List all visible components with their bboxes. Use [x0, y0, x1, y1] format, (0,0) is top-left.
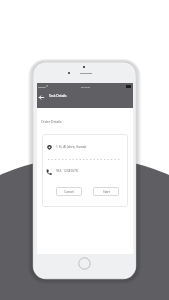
staticText: Order Details [41, 119, 62, 123]
staticText: 1 St, Al Jahra, Kuwait [56, 145, 87, 149]
staticText: 965 12345678 [56, 169, 78, 173]
staticText: Task Details [49, 94, 67, 98]
staticText: Cancel [64, 190, 74, 194]
button[interactable]: Start [93, 187, 119, 196]
staticText: 9:15 PM [81, 85, 90, 88]
staticText: Start [103, 190, 110, 194]
button[interactable]: Cancel [56, 187, 82, 196]
staticText: Carrier [38, 85, 46, 88]
button[interactable]: Back [37, 93, 45, 101]
